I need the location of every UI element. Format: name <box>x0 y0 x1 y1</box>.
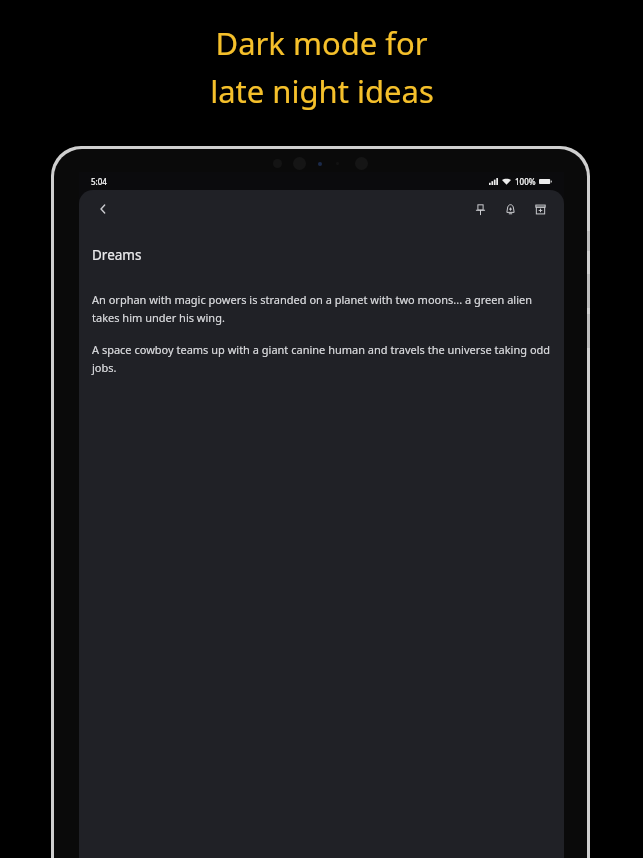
staticText: late night ideas <box>210 70 434 112</box>
button[interactable]: Pin note <box>466 195 494 223</box>
button[interactable]: Back <box>89 195 117 223</box>
staticText: 5:04 <box>91 176 107 187</box>
button[interactable]: An orphan with magic powers is stranded … <box>92 292 551 325</box>
button[interactable]: Archive <box>526 195 554 223</box>
staticText: Dark mode for <box>215 22 428 64</box>
staticText: 100% <box>515 176 536 187</box>
button[interactable]: Add reminder <box>496 195 524 223</box>
button[interactable]: A space cowboy teams up with a giant can… <box>92 342 551 375</box>
button[interactable]: Dreams <box>92 246 142 264</box>
